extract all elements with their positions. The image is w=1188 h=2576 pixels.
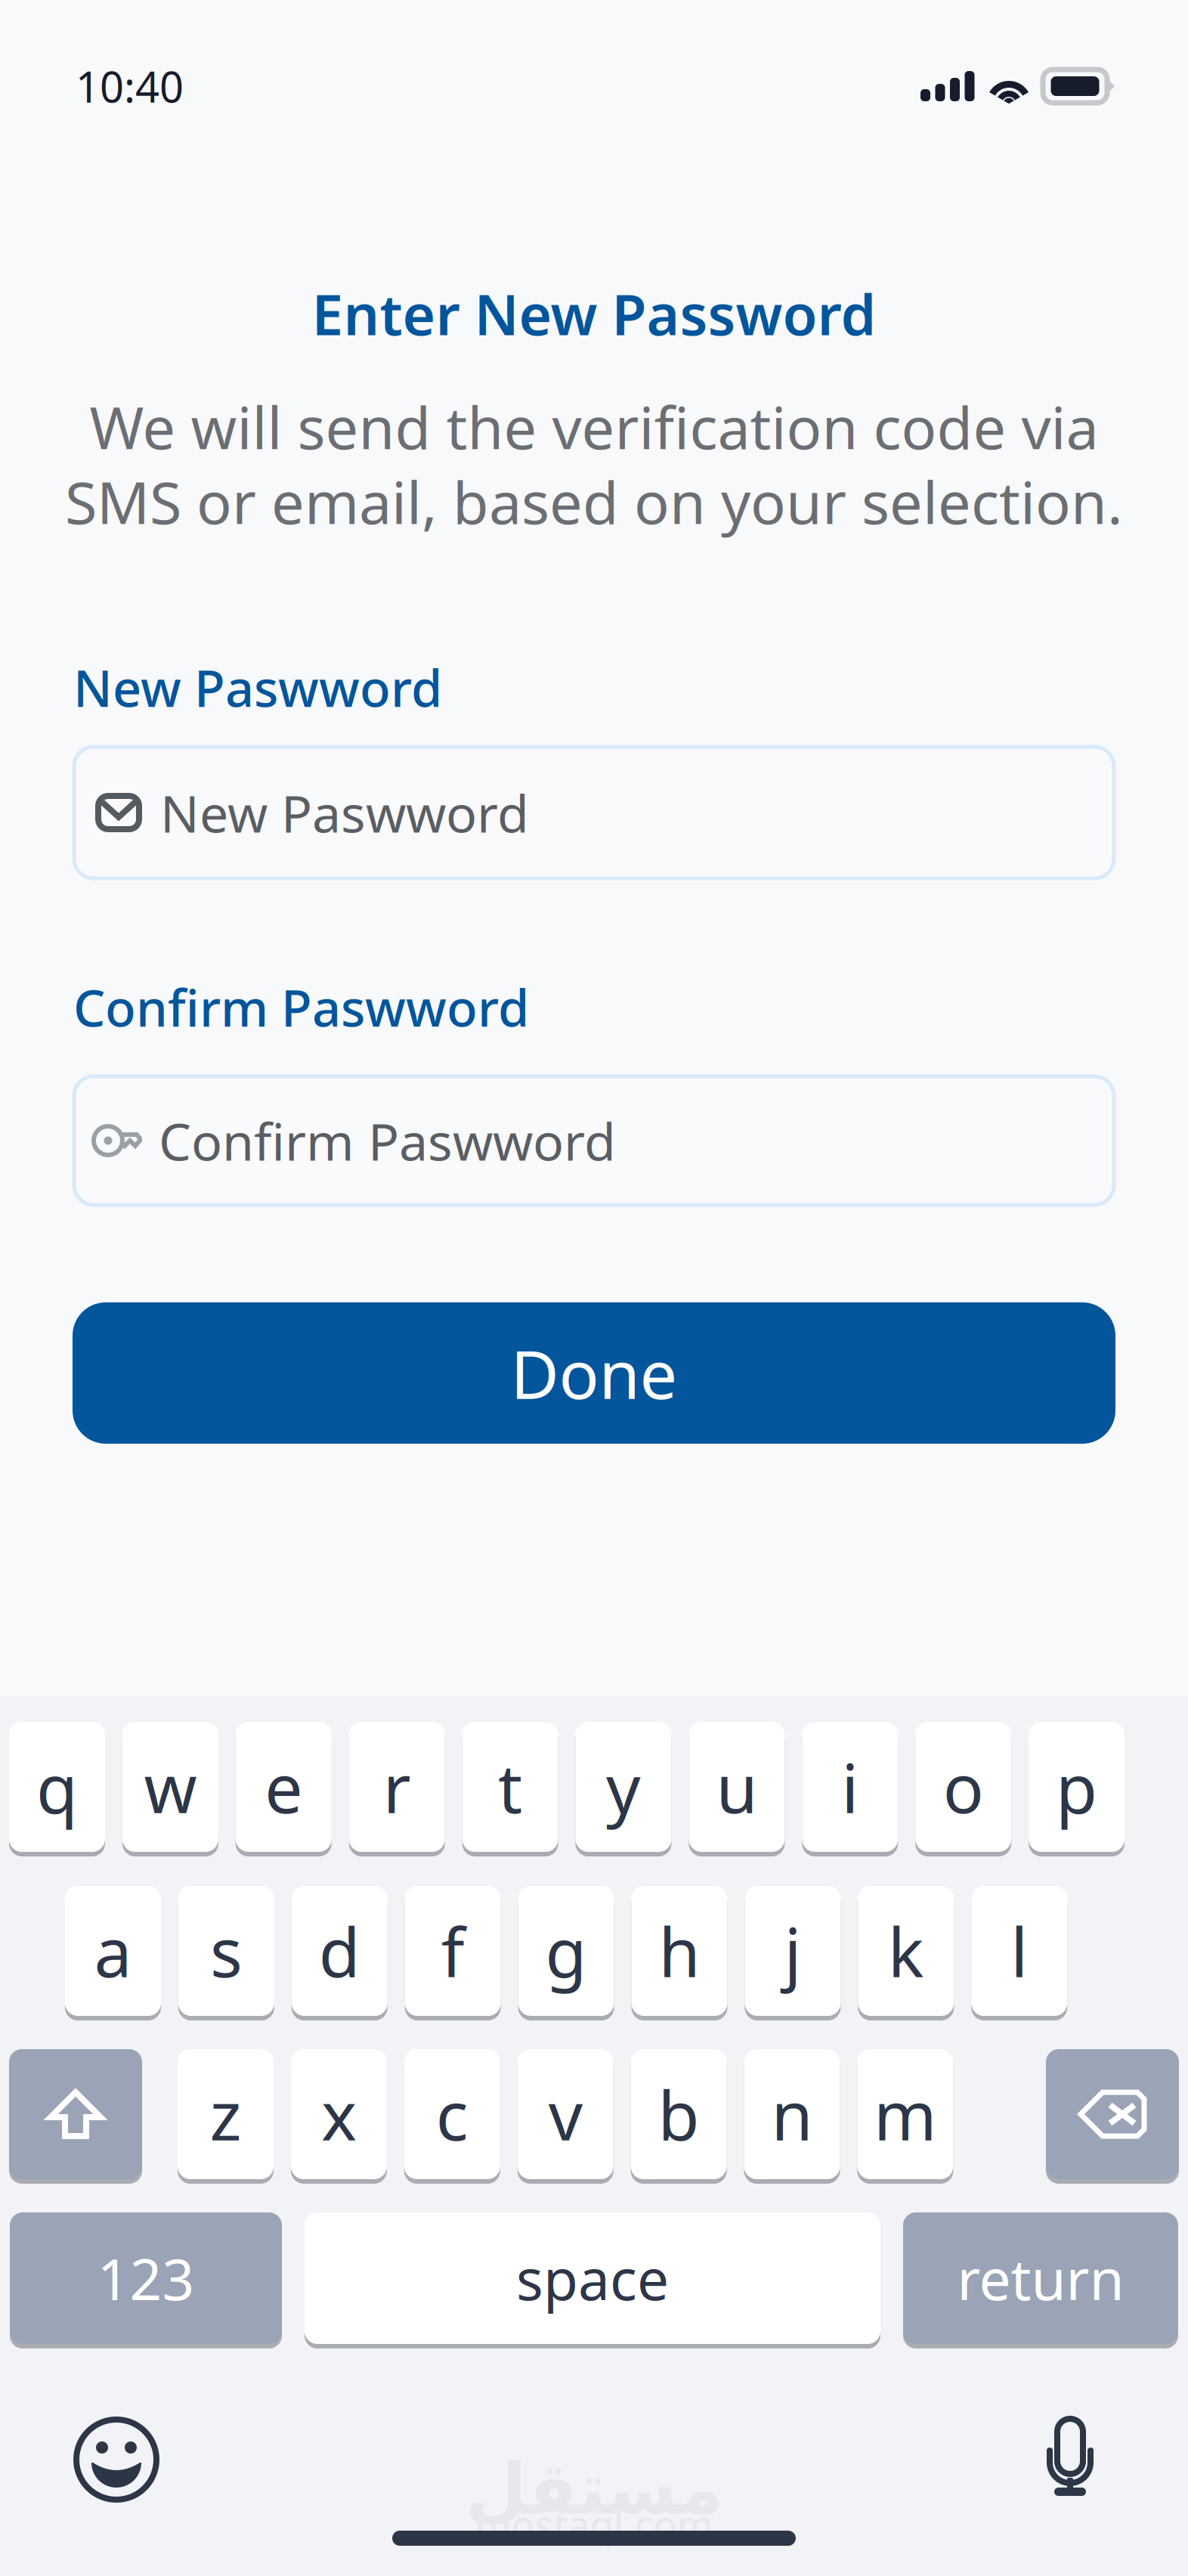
button[interactable]: v bbox=[517, 2047, 613, 2181]
staticText: m bbox=[874, 2069, 937, 2159]
button[interactable]: o bbox=[915, 1720, 1011, 1854]
staticText: mostaql.com bbox=[475, 2499, 713, 2550]
button[interactable]: i bbox=[802, 1720, 898, 1854]
staticText: a bbox=[94, 1906, 132, 1996]
staticText: g bbox=[545, 1906, 587, 1996]
button[interactable]: c bbox=[404, 2047, 500, 2181]
staticText: New Paswword bbox=[160, 778, 529, 847]
button[interactable]: b bbox=[631, 2047, 727, 2181]
button[interactable]: s bbox=[178, 1884, 274, 2018]
staticText: return bbox=[957, 2241, 1124, 2316]
button[interactable]: Dictation bbox=[1047, 2419, 1094, 2496]
staticText: SMS or email, based on your selection. bbox=[65, 463, 1123, 540]
staticText: New Paswword bbox=[73, 654, 442, 721]
staticText: q bbox=[36, 1742, 78, 1832]
staticText: z bbox=[210, 2069, 241, 2159]
staticText: Done bbox=[510, 1329, 678, 1417]
button[interactable]: d bbox=[292, 1884, 388, 2018]
staticText: w bbox=[144, 1742, 197, 1832]
staticText: p bbox=[1056, 1742, 1097, 1832]
button[interactable]: f bbox=[405, 1884, 501, 2018]
staticText: h bbox=[659, 1906, 700, 1996]
staticText: Enter New Password bbox=[312, 276, 876, 351]
staticText: s bbox=[210, 1906, 243, 1996]
button[interactable]: l bbox=[971, 1884, 1067, 2018]
staticText: d bbox=[319, 1906, 360, 1996]
button[interactable]: k bbox=[858, 1884, 954, 2018]
button[interactable]: r bbox=[349, 1720, 445, 1854]
button[interactable]: y bbox=[575, 1720, 671, 1854]
button[interactable]: New Paswword bbox=[74, 747, 1114, 878]
staticText: b bbox=[658, 2069, 699, 2159]
button[interactable]: Delete bbox=[1046, 2047, 1179, 2181]
staticText: l bbox=[1011, 1906, 1028, 1996]
button[interactable]: a bbox=[65, 1884, 161, 2018]
button[interactable]: Shift bbox=[9, 2047, 142, 2181]
button[interactable]: Done bbox=[73, 1302, 1115, 1444]
staticText: y bbox=[606, 1742, 641, 1832]
staticText: u bbox=[716, 1742, 758, 1832]
staticText: k bbox=[888, 1906, 924, 1996]
staticText: f bbox=[441, 1906, 465, 1996]
staticText: x bbox=[321, 2069, 357, 2159]
staticText: Confirm Paswword bbox=[159, 1106, 616, 1175]
button[interactable]: q bbox=[9, 1720, 105, 1854]
staticText: r bbox=[383, 1742, 411, 1832]
staticText: t bbox=[498, 1742, 522, 1832]
button[interactable]: x bbox=[291, 2047, 387, 2181]
staticText: i bbox=[841, 1742, 859, 1832]
button[interactable]: n bbox=[744, 2047, 840, 2181]
staticText: c bbox=[436, 2069, 468, 2159]
staticText: v bbox=[548, 2069, 582, 2159]
staticText: We will send the verification code via bbox=[90, 388, 1098, 465]
button[interactable]: j bbox=[745, 1884, 841, 2018]
staticText: Confirm Paswword bbox=[73, 974, 529, 1040]
staticText: 10:40 bbox=[76, 58, 184, 114]
button[interactable]: h bbox=[631, 1884, 727, 2018]
button[interactable]: Emoji bbox=[76, 2419, 157, 2500]
button[interactable]: z bbox=[178, 2047, 274, 2181]
button[interactable]: u bbox=[689, 1720, 785, 1854]
button[interactable]: return bbox=[903, 2210, 1178, 2346]
button[interactable]: 123 bbox=[10, 2210, 282, 2346]
staticText: j bbox=[784, 1906, 801, 1996]
staticText: o bbox=[943, 1742, 984, 1832]
button[interactable]: t bbox=[462, 1720, 558, 1854]
button[interactable]: p bbox=[1029, 1720, 1125, 1854]
button[interactable]: e bbox=[236, 1720, 332, 1854]
button[interactable]: g bbox=[518, 1884, 614, 2018]
staticText: e bbox=[265, 1742, 303, 1832]
button[interactable]: space bbox=[305, 2210, 880, 2346]
staticText: 123 bbox=[97, 2241, 195, 2316]
button[interactable]: m bbox=[857, 2047, 953, 2181]
button[interactable]: w bbox=[122, 1720, 218, 1854]
staticText: space bbox=[516, 2241, 669, 2316]
staticText: مستقل bbox=[465, 2449, 723, 2529]
staticText: n bbox=[771, 2069, 813, 2159]
button[interactable]: Confirm Paswword bbox=[74, 1076, 1114, 1205]
